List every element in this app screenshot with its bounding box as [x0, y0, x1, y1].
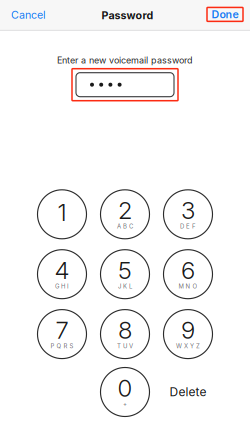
staticText: Cancel — [11, 8, 46, 21]
button[interactable]: 6 — [163, 250, 212, 299]
button[interactable]: Done — [207, 0, 250, 30]
staticText: M N O — [178, 283, 197, 290]
staticText: Password — [101, 9, 153, 22]
staticText: 8 — [118, 316, 132, 345]
staticText: 6 — [181, 256, 195, 285]
staticText: J K L — [118, 283, 132, 290]
staticText: W X Y Z — [176, 342, 200, 350]
staticText: 1 — [57, 198, 66, 227]
button[interactable]: 2 — [100, 190, 149, 239]
staticText: 7 — [55, 316, 68, 345]
staticText: T U V — [117, 342, 133, 350]
staticText: 9 — [181, 316, 195, 345]
button[interactable]: 4 — [37, 250, 86, 299]
button[interactable]: 7 — [37, 310, 86, 359]
button[interactable]: 1 — [37, 190, 86, 239]
staticText: Done — [211, 8, 238, 21]
staticText: 0 — [117, 373, 132, 402]
staticText: 5 — [118, 256, 132, 285]
button[interactable]: 8 — [100, 310, 149, 359]
button[interactable]: 3 — [163, 190, 212, 239]
staticText: P Q R S — [50, 342, 73, 350]
staticText: + — [123, 400, 127, 408]
staticText: A B C — [117, 223, 133, 230]
staticText: 2 — [118, 196, 132, 225]
staticText: 4 — [54, 256, 69, 285]
button[interactable]: 9 — [163, 310, 212, 359]
button[interactable]: Cancel — [0, 0, 53, 30]
staticText: G H I — [55, 283, 69, 290]
staticText: 3 — [181, 196, 195, 225]
button[interactable]: 0 — [100, 367, 149, 416]
staticText: Delete — [169, 385, 206, 399]
staticText: Enter a new voicemail password — [57, 55, 193, 66]
button[interactable]: Delete — [163, 367, 212, 416]
staticText: D E F — [180, 223, 196, 230]
button[interactable]: 5 — [100, 250, 149, 299]
